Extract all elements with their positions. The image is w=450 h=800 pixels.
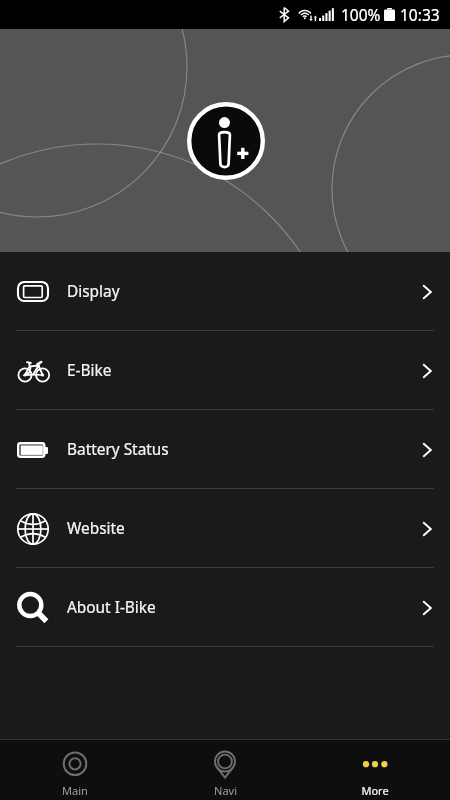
staticText: 10:33 [400, 4, 440, 25]
button[interactable]: Display [0, 252, 450, 331]
button[interactable]: Website [0, 489, 450, 568]
staticText: Battery Status [67, 439, 169, 460]
button[interactable]: Battery Status [0, 410, 450, 489]
staticText: Navi [214, 783, 237, 798]
button[interactable]: Navi [150, 740, 300, 800]
staticText: E-Bike [67, 360, 112, 381]
button[interactable]: About I-Bike [0, 568, 450, 647]
staticText: More [361, 783, 389, 798]
button[interactable]: More [300, 740, 450, 800]
staticText: Main [62, 783, 88, 798]
button[interactable]: Main [0, 740, 150, 800]
staticText: 100% [341, 4, 381, 25]
button[interactable]: E-Bike [0, 331, 450, 410]
staticText: Website [67, 518, 125, 539]
staticText: Display [67, 281, 120, 302]
staticText: About I-Bike [67, 597, 156, 618]
